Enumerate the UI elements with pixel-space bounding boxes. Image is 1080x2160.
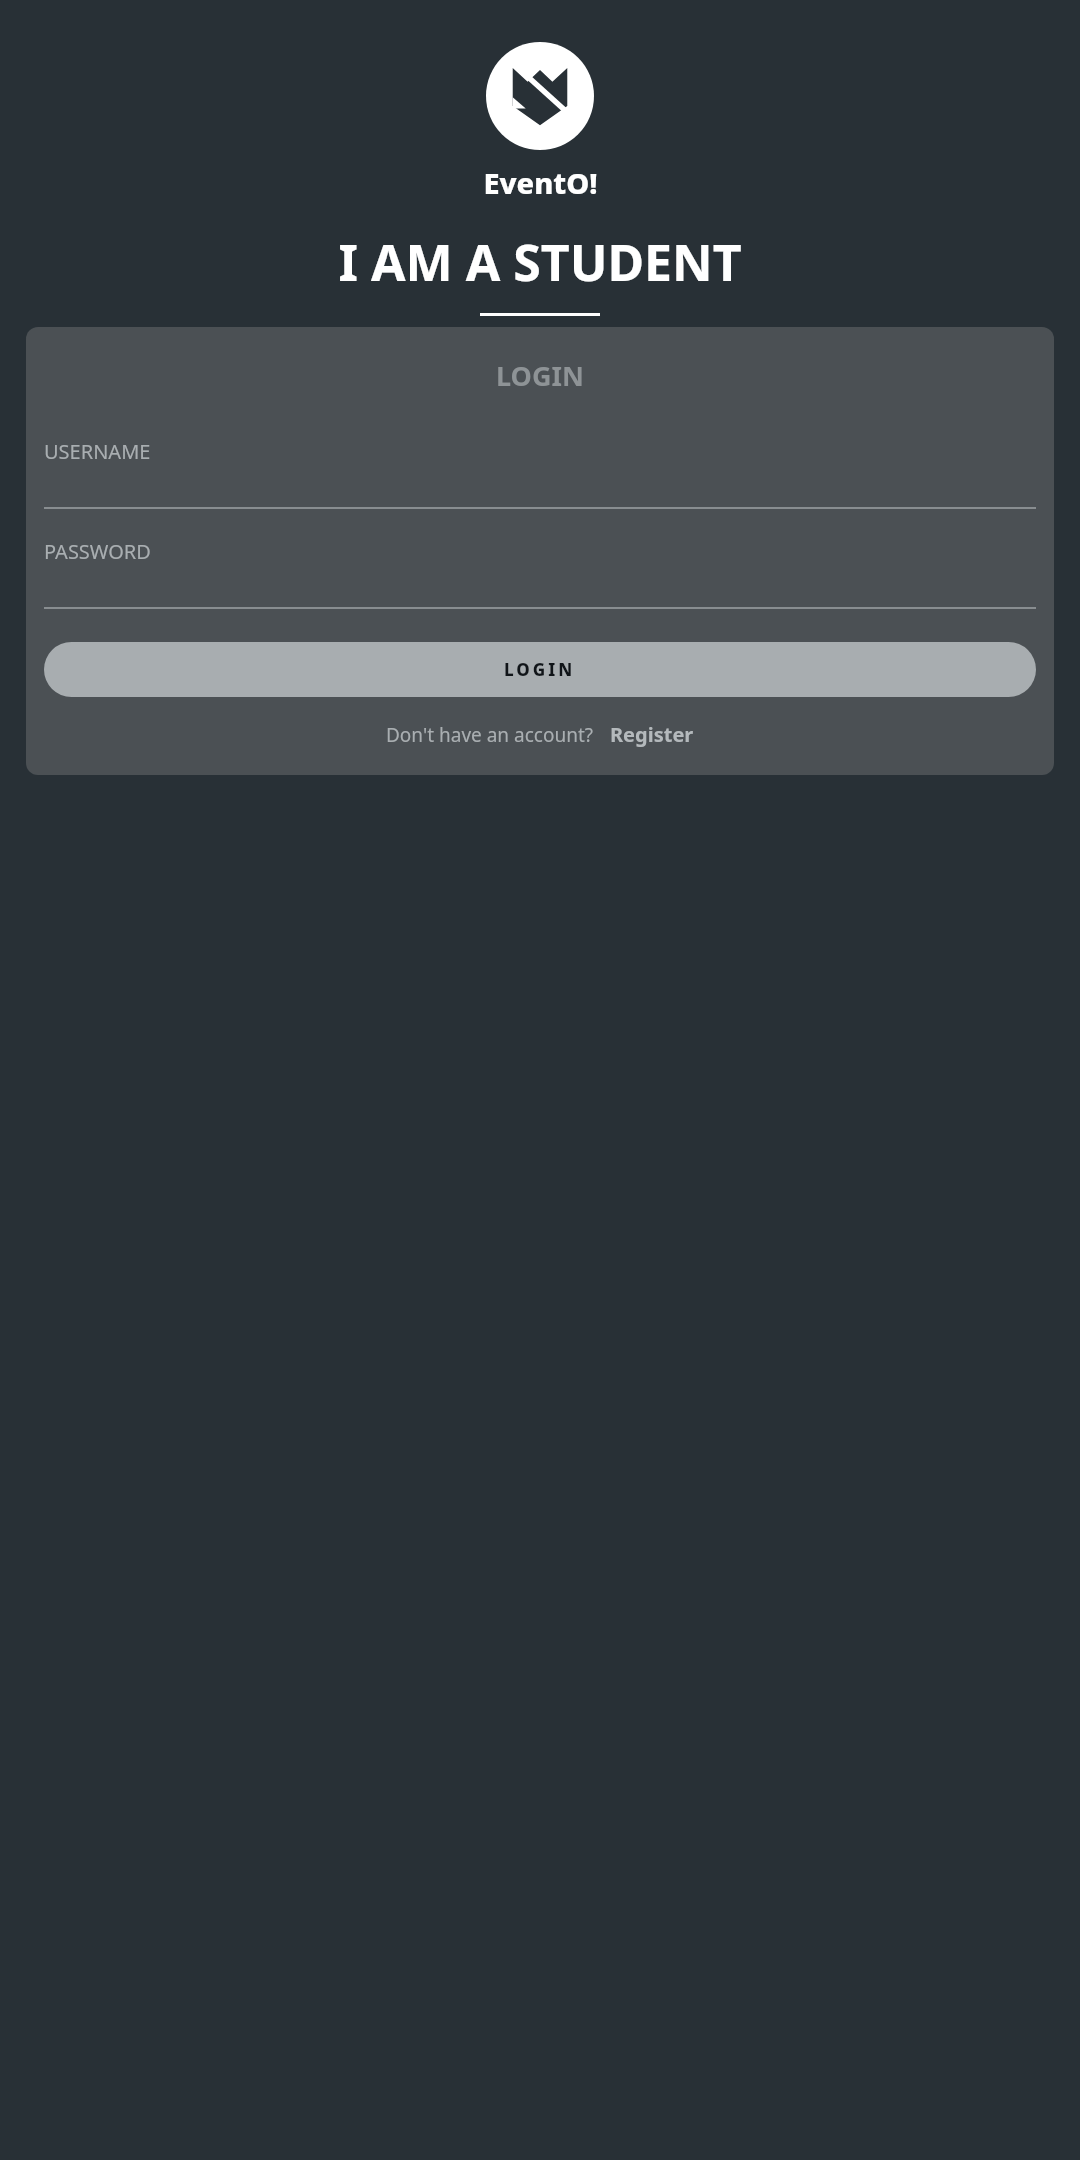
staticText: EventO!: [483, 163, 598, 202]
button[interactable]: USERNAME: [44, 438, 1036, 509]
staticText: LOGIN: [44, 357, 1036, 394]
staticText: LOGIN: [504, 658, 576, 681]
staticText: Don't have an account?: [386, 722, 594, 748]
staticText: I AM A STUDENT: [338, 228, 742, 296]
button[interactable]: PASSWORD: [44, 538, 1036, 609]
staticText: PASSWORD: [44, 538, 151, 565]
staticText: USERNAME: [44, 438, 151, 465]
staticText: Register: [610, 721, 694, 748]
button[interactable]: LOGIN: [44, 642, 1036, 697]
button[interactable]: Register: [610, 721, 694, 748]
